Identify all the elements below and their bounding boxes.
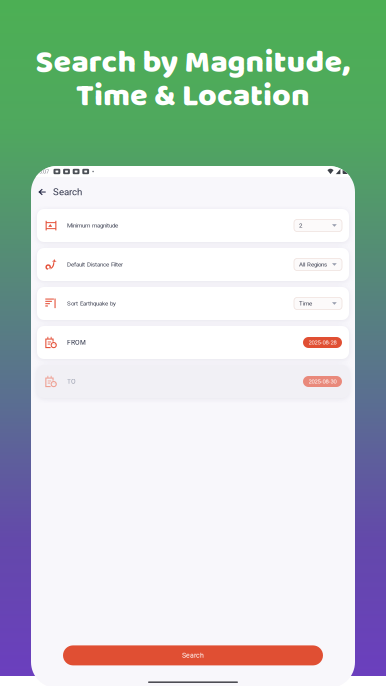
staticText: Default Distance Filter: [67, 261, 123, 268]
button[interactable]: Sort Earthquake by: [37, 287, 349, 320]
staticText: FROM: [67, 339, 86, 346]
button[interactable]: Search: [63, 645, 323, 665]
button[interactable]: FROM: [37, 326, 349, 359]
staticText: Search: [53, 186, 82, 198]
button[interactable]: Time: [294, 297, 342, 309]
staticText: TO: [67, 378, 76, 385]
staticText: 10:07: [36, 168, 49, 175]
button[interactable]: 2: [294, 219, 342, 231]
staticText: 2025-08-30: [308, 378, 336, 385]
staticText: Search: [182, 651, 204, 659]
button[interactable]: Minimum magnitude: [37, 209, 349, 242]
staticText: 2: [299, 222, 302, 229]
staticText: Sort Earthquake by: [67, 300, 116, 307]
staticText: Minimum magnitude: [67, 222, 118, 229]
button[interactable]: All Regions: [294, 258, 342, 270]
staticText: All Regions: [299, 261, 327, 268]
staticText: Search by Magnitude,: [35, 37, 350, 89]
button[interactable]: Default Distance Filter: [37, 248, 349, 281]
button[interactable]: TO: [37, 365, 349, 398]
staticText: Time & Location: [76, 71, 310, 122]
button[interactable]: Back: [35, 184, 49, 200]
staticText: Time: [299, 300, 312, 307]
staticText: 2025-08-28: [308, 339, 336, 346]
